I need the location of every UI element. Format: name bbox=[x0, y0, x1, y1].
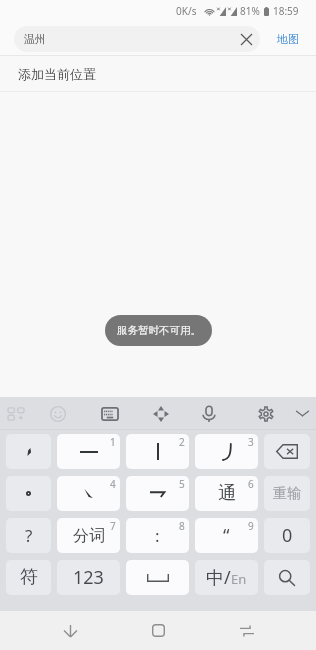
button[interactable]: Space bbox=[126, 560, 189, 595]
staticText: 3 bbox=[248, 435, 254, 449]
button[interactable]: 温州 bbox=[14, 26, 260, 52]
other: Search bbox=[264, 560, 310, 595]
button[interactable]: 4 bbox=[57, 476, 120, 511]
button[interactable]: Settings bbox=[246, 397, 286, 430]
button[interactable]: 123 bbox=[57, 560, 120, 595]
button[interactable]: 2 bbox=[126, 434, 189, 469]
button[interactable] bbox=[6, 476, 51, 511]
button[interactable]: Keyboard layouts bbox=[0, 397, 36, 430]
button[interactable]: 重输 bbox=[264, 476, 310, 511]
staticText: “ bbox=[223, 523, 230, 548]
other: Delete bbox=[264, 434, 310, 469]
staticText: 添加当前位置 bbox=[18, 66, 96, 82]
staticText: 2 bbox=[179, 435, 185, 449]
button[interactable] bbox=[6, 434, 51, 469]
staticText: : bbox=[155, 524, 160, 547]
button[interactable]: Voice input bbox=[189, 397, 229, 430]
button[interactable]: Home bbox=[136, 611, 180, 650]
staticText: 0K/s bbox=[176, 4, 197, 18]
button[interactable]: “ bbox=[195, 518, 258, 553]
staticText: 9 bbox=[248, 519, 254, 533]
button[interactable]: 通 bbox=[195, 476, 258, 511]
staticText: 地图 bbox=[277, 32, 299, 46]
staticText: 0 bbox=[282, 523, 293, 548]
button[interactable]: 3 bbox=[195, 434, 258, 469]
staticText: 温州 bbox=[24, 32, 46, 46]
button[interactable]: Recent apps bbox=[225, 611, 269, 650]
button[interactable]: 添加当前位置 bbox=[0, 56, 316, 92]
staticText: 8 bbox=[179, 519, 185, 533]
button[interactable]: 1 bbox=[57, 434, 120, 469]
staticText: En bbox=[231, 570, 247, 588]
staticText: 4 bbox=[110, 477, 116, 491]
button[interactable]: 0 bbox=[264, 518, 310, 553]
button[interactable]: Keyboard mode bbox=[90, 397, 130, 430]
other: Space bbox=[126, 560, 189, 595]
button[interactable]: 地图 bbox=[260, 22, 316, 56]
staticText: 7 bbox=[110, 519, 116, 533]
button[interactable]: Clear text bbox=[233, 26, 259, 52]
button[interactable]: 符 bbox=[6, 560, 51, 595]
staticText: ? bbox=[25, 524, 33, 547]
button[interactable]: 分词 bbox=[57, 518, 120, 553]
staticText: 分词 bbox=[73, 526, 105, 546]
button[interactable]: ? bbox=[6, 518, 51, 553]
staticText: 18:59 bbox=[273, 4, 299, 18]
button[interactable]: 中/ bbox=[195, 560, 258, 595]
staticText: 81% bbox=[240, 4, 260, 18]
button[interactable]: Hide keyboard bbox=[48, 611, 92, 650]
button[interactable]: Delete bbox=[264, 434, 310, 469]
staticText: 服务暂时不可用。 bbox=[117, 324, 201, 337]
button[interactable]: : bbox=[126, 518, 189, 553]
button[interactable]: Hide keyboard bbox=[282, 397, 316, 430]
staticText: 6 bbox=[248, 477, 254, 491]
button[interactable]: Search bbox=[264, 560, 310, 595]
staticText: 符 bbox=[20, 566, 38, 589]
staticText: 通 bbox=[218, 482, 236, 505]
staticText: 1 bbox=[110, 435, 116, 449]
button[interactable]: 5 bbox=[126, 476, 189, 511]
staticText: 中/ bbox=[206, 565, 231, 590]
staticText: 重输 bbox=[273, 485, 301, 503]
staticText: 5 bbox=[179, 477, 185, 491]
staticText: 123 bbox=[73, 565, 104, 590]
button[interactable]: Move cursor bbox=[141, 397, 181, 430]
button[interactable]: Emoji bbox=[38, 397, 78, 430]
